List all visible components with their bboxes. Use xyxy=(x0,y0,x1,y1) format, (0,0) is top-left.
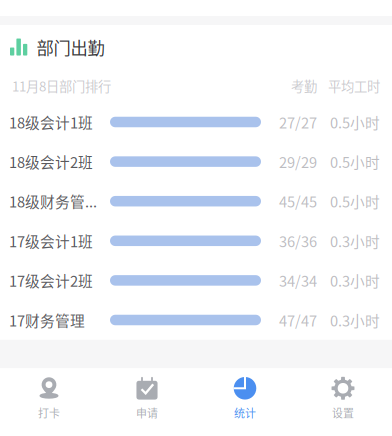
staticText: 部门出勤 xyxy=(37,34,105,60)
staticText: 考勤 xyxy=(291,76,317,95)
staticText: 17级会计1班 xyxy=(9,230,93,251)
staticText: 47/47 xyxy=(279,309,317,331)
staticText: 0.5小时 xyxy=(330,191,380,212)
staticText: 17财务管理 xyxy=(9,309,85,331)
staticText: 申请 xyxy=(136,405,158,421)
staticText: 18级财务管... xyxy=(9,191,97,212)
button[interactable]: 统计 xyxy=(196,368,294,436)
staticText: 36/36 xyxy=(279,230,317,251)
staticText: 45/45 xyxy=(279,191,317,212)
staticText: 平均工时 xyxy=(328,76,380,95)
staticText: 统计 xyxy=(234,405,256,421)
staticText: 设置 xyxy=(332,405,354,421)
button[interactable]: 打卡 xyxy=(0,368,98,436)
staticText: 17级会计2班 xyxy=(9,270,93,291)
staticText: 27/27 xyxy=(279,111,317,133)
staticText: 0.3小时 xyxy=(330,309,380,331)
staticText: 0.5小时 xyxy=(330,111,380,133)
button[interactable]: 申请 xyxy=(98,368,196,436)
button[interactable]: 设置 xyxy=(294,368,392,436)
staticText: 11月8日部门排行 xyxy=(12,76,111,95)
staticText: 0.3小时 xyxy=(330,270,380,291)
staticText: 34/34 xyxy=(279,270,317,291)
staticText: 29/29 xyxy=(279,151,317,172)
staticText: 打卡 xyxy=(38,405,60,421)
staticText: 0.5小时 xyxy=(330,151,380,172)
staticText: 18级会计1班 xyxy=(9,111,93,133)
staticText: 0.3小时 xyxy=(330,230,380,251)
staticText: 18级会计2班 xyxy=(9,151,93,172)
